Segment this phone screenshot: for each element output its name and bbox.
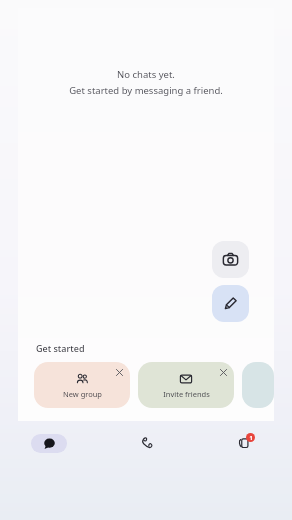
button[interactable]: Camera: [212, 241, 249, 278]
staticText: New group: [63, 389, 102, 399]
button[interactable]: Invite friends: [138, 362, 234, 408]
button[interactable]: Stories, 1 new: [195, 428, 292, 458]
staticText: Get started: [36, 342, 85, 354]
button[interactable]: More suggestions: [242, 362, 274, 408]
button[interactable]: Dismiss Invite friends: [217, 366, 230, 379]
staticText: 1: [249, 434, 253, 441]
staticText: No chats yet.: [117, 68, 175, 81]
button[interactable]: Dismiss New group: [113, 366, 126, 379]
button[interactable]: New message: [212, 285, 249, 322]
staticText: Invite friends: [163, 389, 210, 399]
staticText: Get started by messaging a friend.: [69, 84, 223, 97]
button[interactable]: Calls: [98, 428, 195, 458]
button[interactable]: [0, 428, 98, 458]
button[interactable]: New group: [34, 362, 130, 408]
